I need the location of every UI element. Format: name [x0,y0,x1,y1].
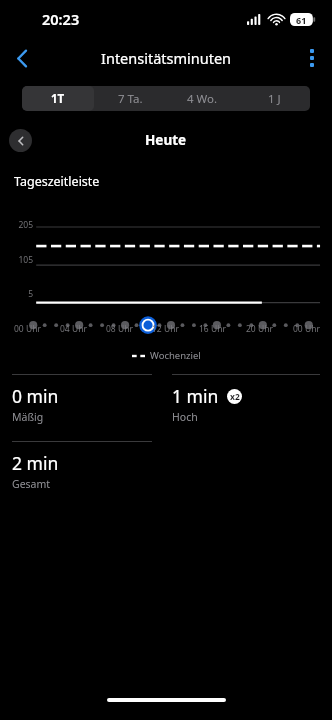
staticText: Tageszeitleiste [14,173,100,190]
button[interactable]: 1T [22,86,94,111]
staticText: 08 Uhr [106,323,133,335]
staticText: 20 Uhr [246,323,273,335]
staticText: Heute [145,131,187,149]
button[interactable]: 1 min [172,374,320,424]
staticText: 00 Uhr [14,323,41,335]
button[interactable]: Weitere Optionen [292,38,332,78]
staticText: 4 Wo. [187,91,218,107]
staticText: x2 [230,391,240,403]
staticText: 105 [18,254,33,266]
staticText: 5 [28,288,33,300]
staticText: 00 Uhr [293,323,320,335]
staticText: 1 min [172,384,219,408]
staticText: 61 [296,14,307,26]
staticText: Mäßig [12,410,44,424]
staticText: 1T [51,91,65,107]
staticText: 205 [18,219,33,231]
button[interactable]: 7 Ta. [94,86,166,111]
staticText: 1 J [268,91,281,107]
staticText: 20:23 [42,9,80,29]
staticText: 0 min [12,384,59,408]
staticText: Gesamt [12,477,51,491]
staticText: Intensitätsminuten [101,48,232,68]
staticText: Wochenziel [150,349,201,362]
button[interactable]: 1 J [238,86,310,111]
button[interactable]: Zurück [0,38,44,78]
staticText: 2 min [12,451,59,475]
staticText: 04 Uhr [60,323,87,335]
staticText: 7 Ta. [118,91,143,107]
button[interactable]: Vorheriger Tag [9,129,32,152]
button[interactable]: 4 Wo. [166,86,238,111]
staticText: 16 Uhr [199,323,226,335]
button[interactable]: 0 min [12,374,152,424]
staticText: Hoch [172,410,198,424]
button[interactable]: 2 min [12,441,152,491]
staticText: 12 Uhr [152,323,179,335]
